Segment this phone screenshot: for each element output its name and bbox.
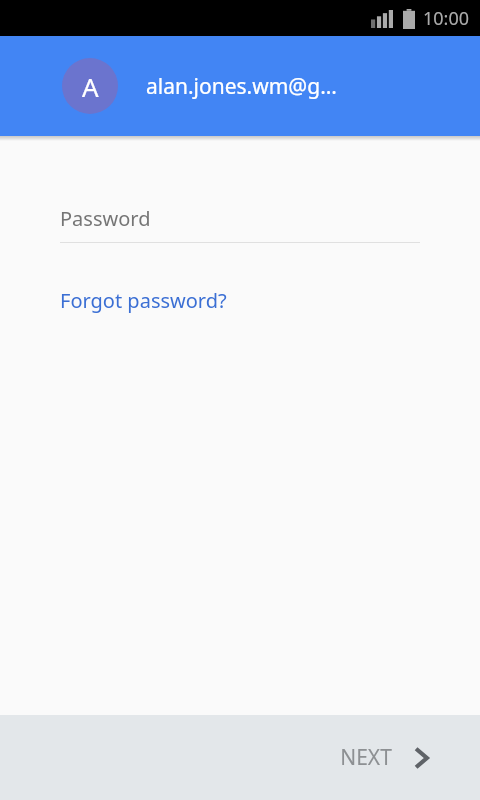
- staticText: Password: [60, 205, 151, 232]
- button[interactable]: Forgot password?: [60, 287, 227, 314]
- button[interactable]: A: [0, 36, 480, 136]
- staticText: 10:00: [423, 6, 470, 31]
- staticText: Forgot password?: [60, 287, 227, 314]
- staticText: NEXT: [340, 743, 392, 772]
- staticText: A: [82, 69, 99, 104]
- other: Next: [414, 747, 428, 769]
- button[interactable]: NEXT: [328, 729, 440, 786]
- staticText: alan.jones.wm@g…: [146, 72, 337, 101]
- button[interactable]: Password: [60, 205, 420, 243]
